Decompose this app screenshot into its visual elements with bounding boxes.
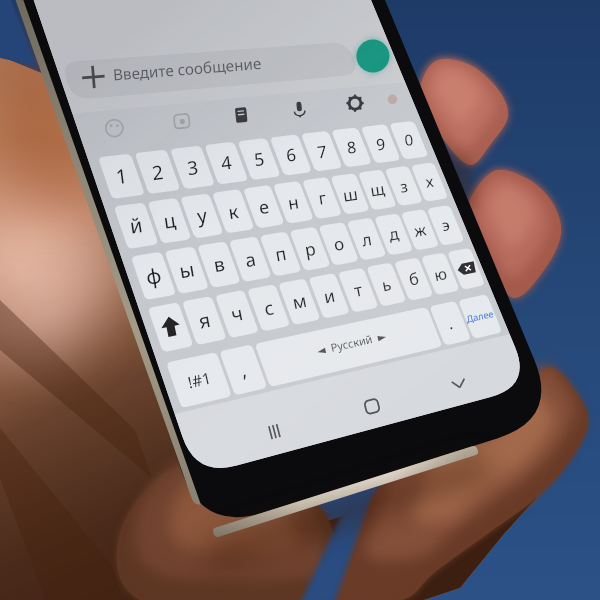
button[interactable]: Скрыть клавиатуру (439, 366, 479, 402)
button[interactable]: 8 (338, 127, 365, 167)
button[interactable]: щ (366, 169, 391, 209)
button[interactable]: Недавние приложения (254, 414, 294, 450)
button[interactable]: б (402, 259, 427, 299)
button[interactable]: а (237, 239, 265, 279)
button[interactable]: й (121, 205, 152, 245)
button[interactable]: п (268, 233, 296, 273)
button[interactable]: ц (155, 201, 185, 241)
button[interactable]: Shift (155, 307, 186, 347)
button[interactable]: ы (172, 250, 202, 290)
button[interactable]: Введите сообщение (72, 48, 372, 100)
button[interactable]: т (345, 270, 371, 310)
button[interactable]: и (316, 276, 343, 316)
button[interactable]: Голосовой ввод (282, 92, 316, 124)
button[interactable]: 6 (277, 135, 305, 175)
button[interactable]: 1 (105, 156, 138, 196)
button[interactable]: ч (223, 294, 252, 334)
button[interactable]: р (298, 228, 325, 268)
button[interactable]: Главный экран (352, 388, 392, 424)
button[interactable]: Пробел, Русский (264, 323, 440, 367)
button[interactable]: у (187, 196, 216, 236)
button[interactable]: 9 (368, 124, 394, 164)
button[interactable]: з (393, 166, 417, 206)
button[interactable]: Контакт (358, 38, 394, 74)
button[interactable]: Буфер обмена (224, 98, 258, 130)
button[interactable]: Удалить (455, 248, 478, 288)
button[interactable]: 4 (211, 143, 241, 183)
button[interactable]: Точка (435, 303, 465, 343)
button[interactable]: ж (411, 209, 435, 249)
button[interactable]: г (310, 178, 336, 218)
button[interactable]: Настройки клавиатуры (338, 86, 372, 118)
button[interactable]: н (281, 182, 308, 222)
button[interactable]: ю (429, 254, 453, 294)
button[interactable]: о (328, 223, 354, 263)
button[interactable]: 5 (244, 139, 273, 179)
button[interactable]: в (205, 244, 234, 284)
button[interactable]: 7 (308, 131, 336, 171)
button[interactable]: я (190, 300, 220, 340)
button[interactable]: 3 (177, 147, 208, 187)
button[interactable]: ф (138, 256, 169, 296)
button[interactable]: к (219, 191, 247, 231)
button[interactable]: е (250, 186, 277, 226)
button[interactable]: х (419, 162, 442, 202)
button[interactable]: с (255, 288, 284, 328)
button[interactable]: л (356, 218, 381, 258)
button[interactable]: Стикеры (166, 106, 200, 138)
button[interactable]: ш (338, 174, 363, 214)
button[interactable]: э (437, 205, 460, 245)
button[interactable]: Эмодзи (100, 118, 134, 150)
button[interactable]: д (384, 214, 409, 254)
button[interactable]: Далее (463, 296, 497, 336)
button[interactable]: 0 (396, 120, 421, 160)
button[interactable]: ь (374, 264, 399, 304)
button[interactable]: !#1 (177, 358, 221, 402)
button[interactable]: 2 (141, 152, 173, 192)
button[interactable]: Запятая (227, 348, 259, 392)
button[interactable]: м (286, 281, 314, 321)
